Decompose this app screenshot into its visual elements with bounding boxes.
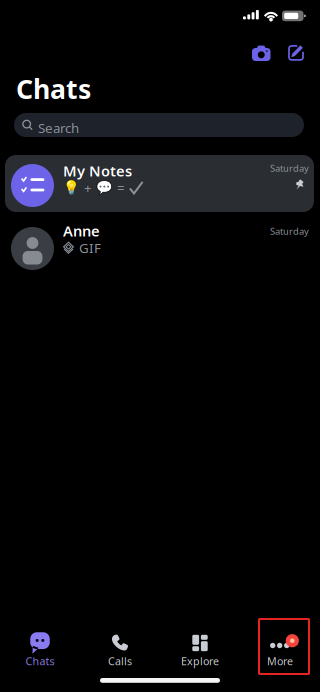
button[interactable]: Explore [160,623,240,671]
staticText: Saturday [270,225,309,237]
staticText: GIF [79,239,101,257]
staticText: Search [38,119,79,137]
staticText: = [117,179,125,197]
staticText: Saturday [270,162,309,174]
button[interactable]: Calls [80,623,160,671]
button[interactable]: New message [288,45,304,61]
button[interactable]: More [240,623,320,671]
staticText: 💬 [96,180,113,195]
staticText: Explore [181,654,219,668]
staticText: Anne [63,221,100,240]
staticText: My Notes [63,161,132,180]
button[interactable]: Camera [252,45,270,61]
staticText: + [84,179,92,197]
button[interactable]: My Notes [5,155,314,212]
staticText: 💡 [63,180,80,195]
button[interactable]: Search [14,113,304,137]
staticText: Chats [25,654,54,668]
staticText: Calls [108,654,132,668]
staticText: Chats [16,71,91,106]
staticText: More [267,654,293,668]
button[interactable]: Anne [5,218,314,275]
button[interactable]: Chats [0,623,80,671]
